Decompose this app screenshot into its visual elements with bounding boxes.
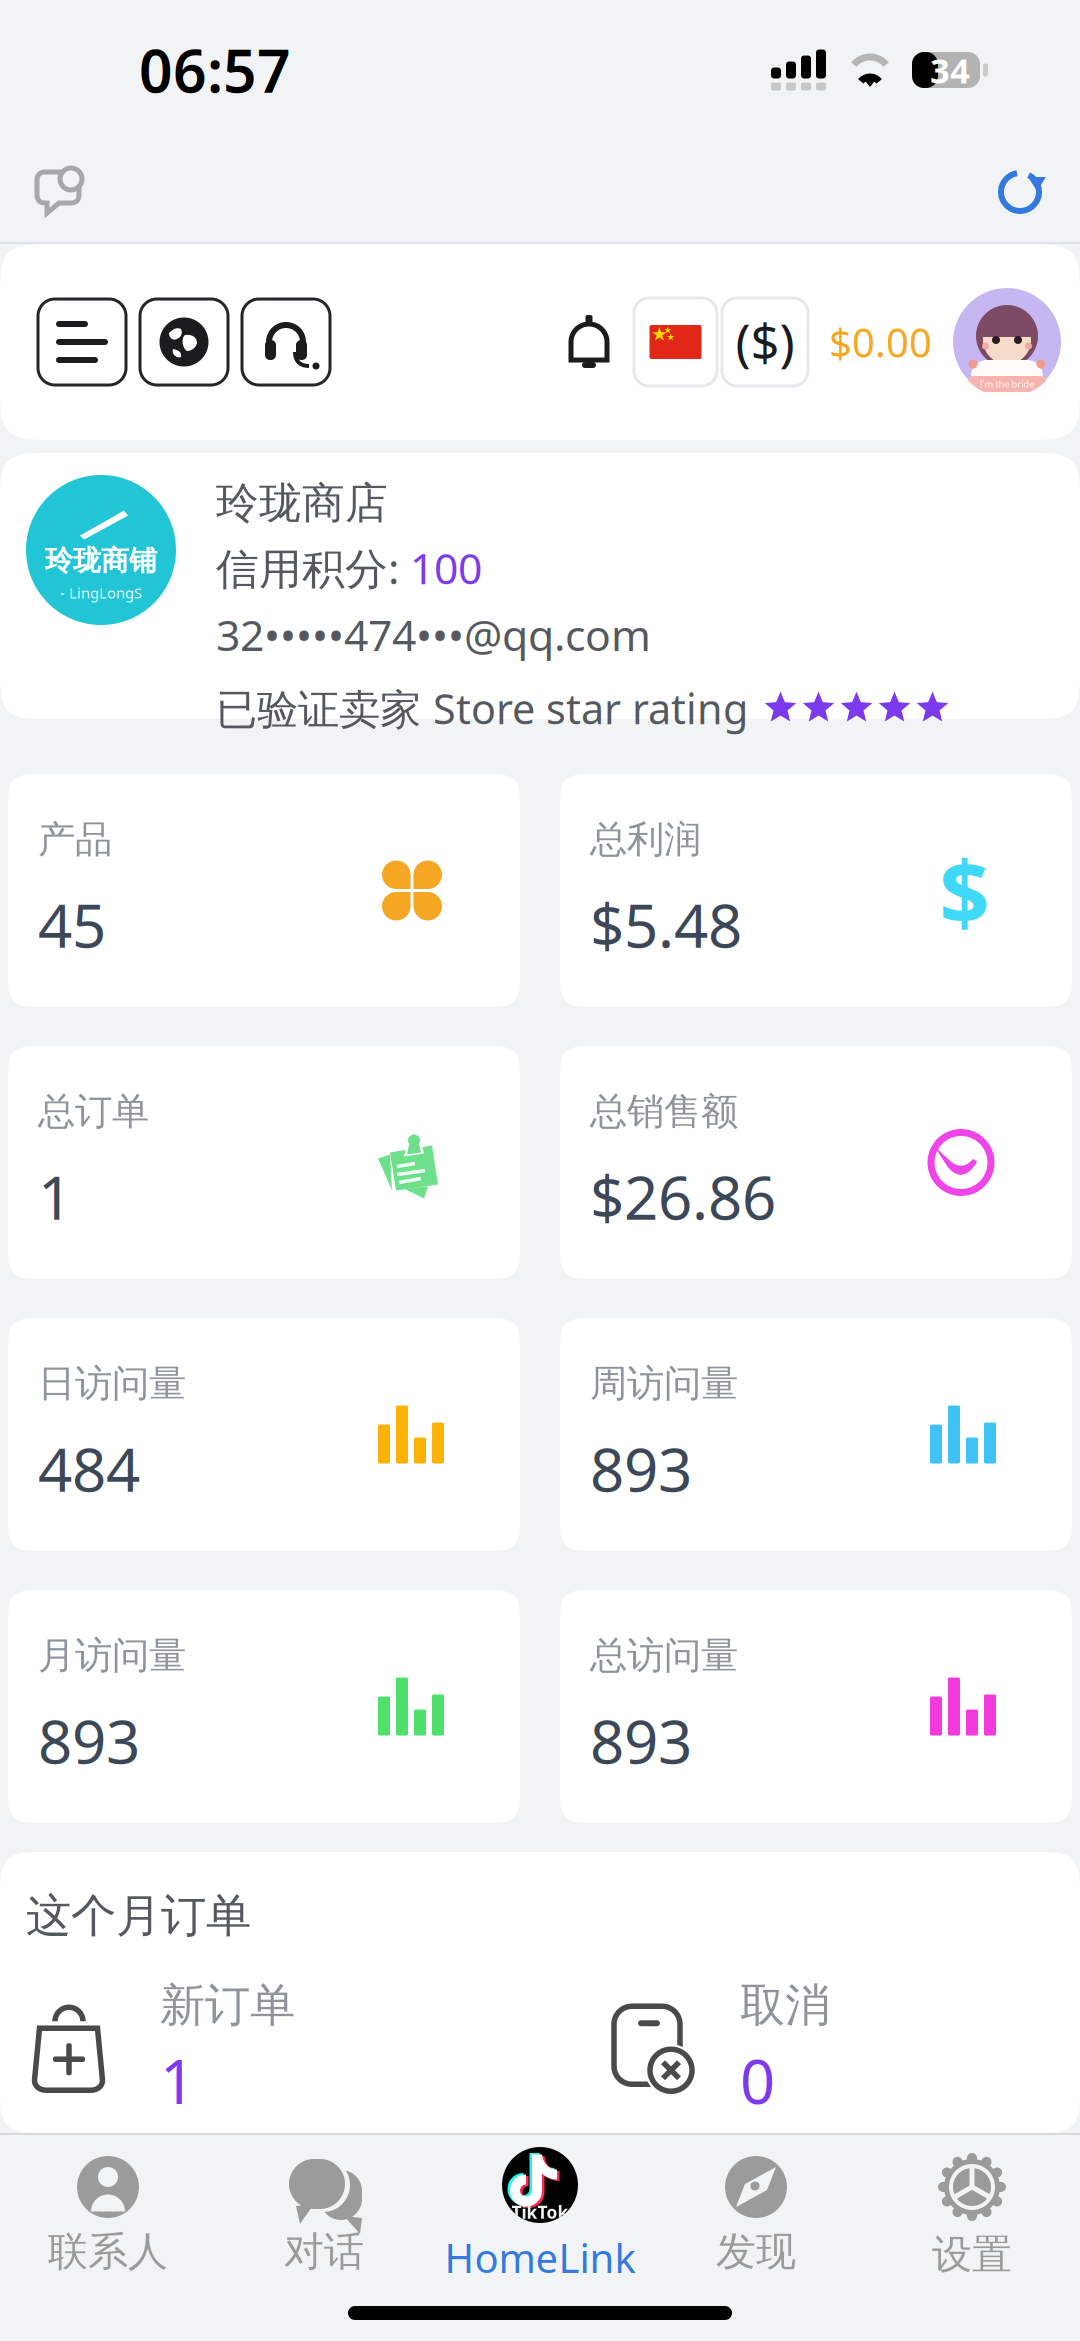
button[interactable]: 总访问量: [560, 1590, 1072, 1823]
staticText: 月访问量: [38, 1633, 186, 1679]
staticText: 893: [38, 1701, 140, 1780]
button[interactable]: 总销售额: [560, 1046, 1072, 1279]
staticText: 45: [38, 885, 106, 964]
staticText: 32•••••474•••@qq.com: [216, 606, 651, 663]
staticText: 总访问量: [590, 1633, 738, 1679]
button[interactable]: 联系人: [0, 2155, 216, 2276]
staticText: 34: [930, 47, 970, 93]
staticText: 日访问量: [38, 1361, 186, 1407]
button[interactable]: 总利润: [560, 774, 1072, 1007]
staticText: 产品: [38, 817, 112, 863]
staticText: 新订单: [160, 1978, 295, 2033]
staticText: 联系人: [48, 2227, 168, 2276]
button[interactable]: 新订单: [26, 1978, 606, 2121]
staticText: $0.00: [829, 315, 932, 368]
button[interactable]: 周访问量: [560, 1318, 1072, 1551]
button[interactable]: 月访问量: [8, 1590, 520, 1823]
staticText: 100: [410, 539, 482, 596]
button[interactable]: 对话: [216, 2155, 432, 2276]
staticText: 取消: [740, 1978, 830, 2033]
button[interactable]: Notifications: [558, 305, 620, 379]
staticText: I'm the bride: [979, 378, 1034, 390]
staticText: 893: [590, 1701, 692, 1780]
button[interactable]: Profile: [952, 287, 1062, 397]
button[interactable]: 设置: [864, 2152, 1080, 2279]
button[interactable]: 产品: [8, 774, 520, 1007]
staticText: 484: [38, 1429, 140, 1508]
staticText: 总订单: [38, 1089, 149, 1135]
staticText: 玲珑商铺: [45, 544, 157, 578]
button[interactable]: Menu: [38, 299, 126, 385]
button[interactable]: 日访问量: [8, 1318, 520, 1551]
staticText: 1: [160, 2039, 195, 2121]
staticText: 发现: [716, 2227, 796, 2276]
button[interactable]: 总订单: [8, 1046, 520, 1279]
staticText: 总利润: [590, 817, 701, 863]
staticText: 0: [740, 2039, 775, 2121]
staticText: - LingLongS: [60, 583, 142, 602]
staticText: 玲珑商店: [216, 477, 388, 529]
button[interactable]: Messages: [18, 152, 98, 232]
staticText: 周访问量: [590, 1361, 738, 1407]
staticText: 这个月订单: [26, 1888, 251, 1944]
staticText: 对话: [284, 2227, 364, 2276]
staticText: HomeLink: [444, 2231, 635, 2284]
staticText: 设置: [932, 2230, 1012, 2279]
staticText: ★: [651, 323, 668, 345]
button[interactable]: 发现: [648, 2155, 864, 2276]
button[interactable]: Refresh: [980, 152, 1060, 232]
staticText: ★: [666, 332, 674, 342]
staticText: 893: [590, 1429, 692, 1508]
staticText: 已验证卖家 Store star rating: [216, 681, 748, 736]
staticText: 1: [38, 1157, 72, 1236]
staticText: 总销售额: [590, 1089, 738, 1135]
staticText: $: [939, 832, 989, 949]
staticText: 06:57: [139, 31, 291, 109]
staticText: $5.48: [590, 885, 742, 964]
button[interactable]: Currency: [722, 298, 808, 386]
button[interactable]: Language: [140, 299, 228, 385]
button[interactable]: Country: [634, 298, 717, 386]
staticText: ($): [735, 308, 794, 376]
button[interactable]: TikTok: [432, 2147, 648, 2284]
staticText: 信用积分:: [216, 539, 410, 596]
staticText: ★: [663, 325, 671, 335]
button[interactable]: 取消: [606, 1978, 1060, 2121]
button[interactable]: Support: [242, 299, 330, 385]
staticText: TikTok: [511, 2200, 568, 2223]
staticText: $26.86: [590, 1157, 776, 1236]
